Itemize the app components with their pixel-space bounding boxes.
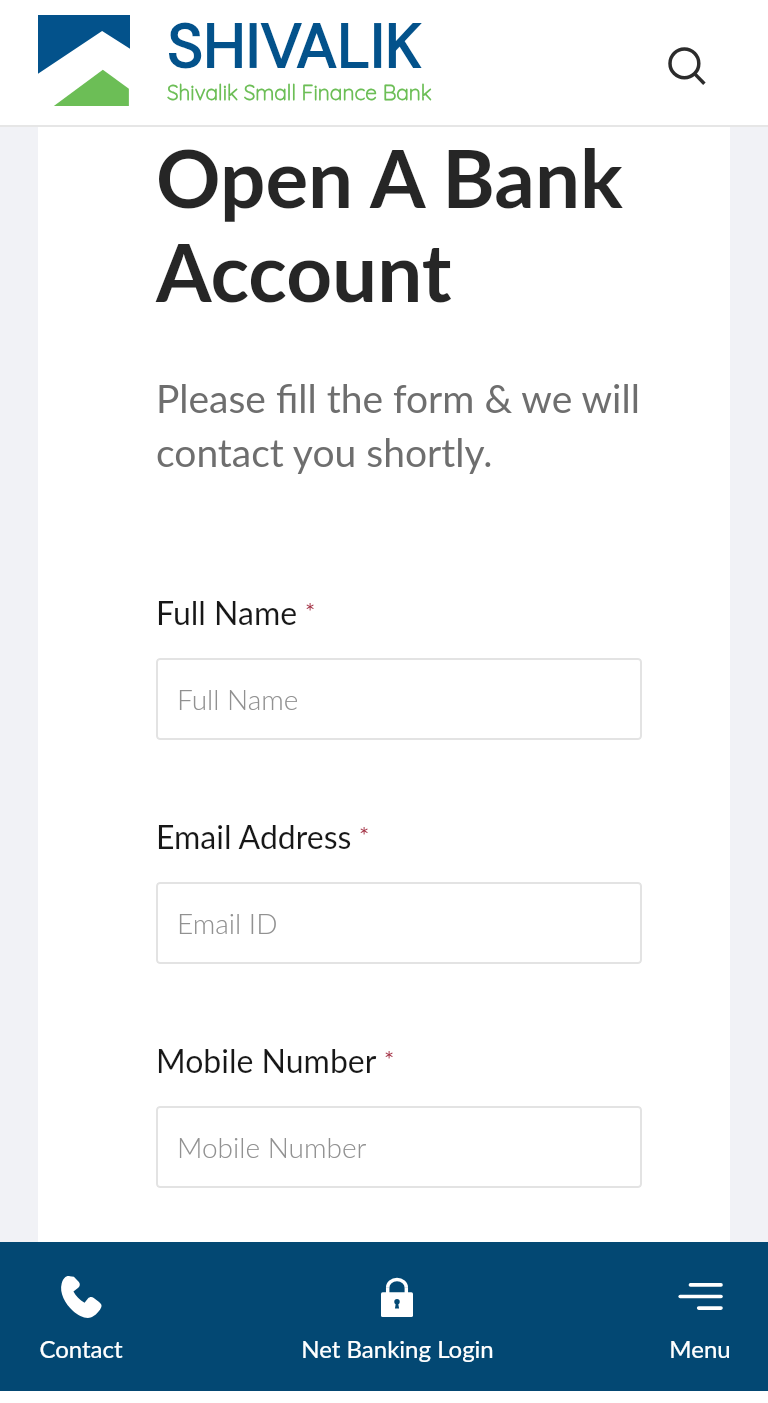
button[interactable]: Full Name [156,658,642,740]
button[interactable]: Email ID [156,882,642,964]
button[interactable]: Contact [0,1242,162,1391]
staticText: * [384,1044,395,1073]
button[interactable]: Search [650,29,726,105]
button[interactable]: Net Banking Login [162,1242,632,1391]
staticText: Email Address [156,817,352,855]
staticText: Please fill the form & we will contact y… [156,375,642,476]
staticText: Open A Bank Account [156,129,642,319]
staticText: Shivalik Small Finance Bank [167,79,432,105]
staticText: Email ID [177,906,278,940]
staticText: Full Name [156,593,298,631]
staticText: SHIVALIK [167,5,422,86]
staticText: * [359,820,370,849]
button[interactable]: Menu [632,1242,768,1391]
staticText: * [305,596,316,625]
staticText: Full Name [177,682,299,716]
button[interactable]: Mobile Number [156,1106,642,1188]
staticText: Contact [39,1334,123,1363]
staticText: Menu [669,1334,731,1363]
staticText: Net Banking Login [301,1334,494,1363]
staticText: Mobile Number [156,1041,377,1079]
staticText: Mobile Number [177,1130,367,1164]
